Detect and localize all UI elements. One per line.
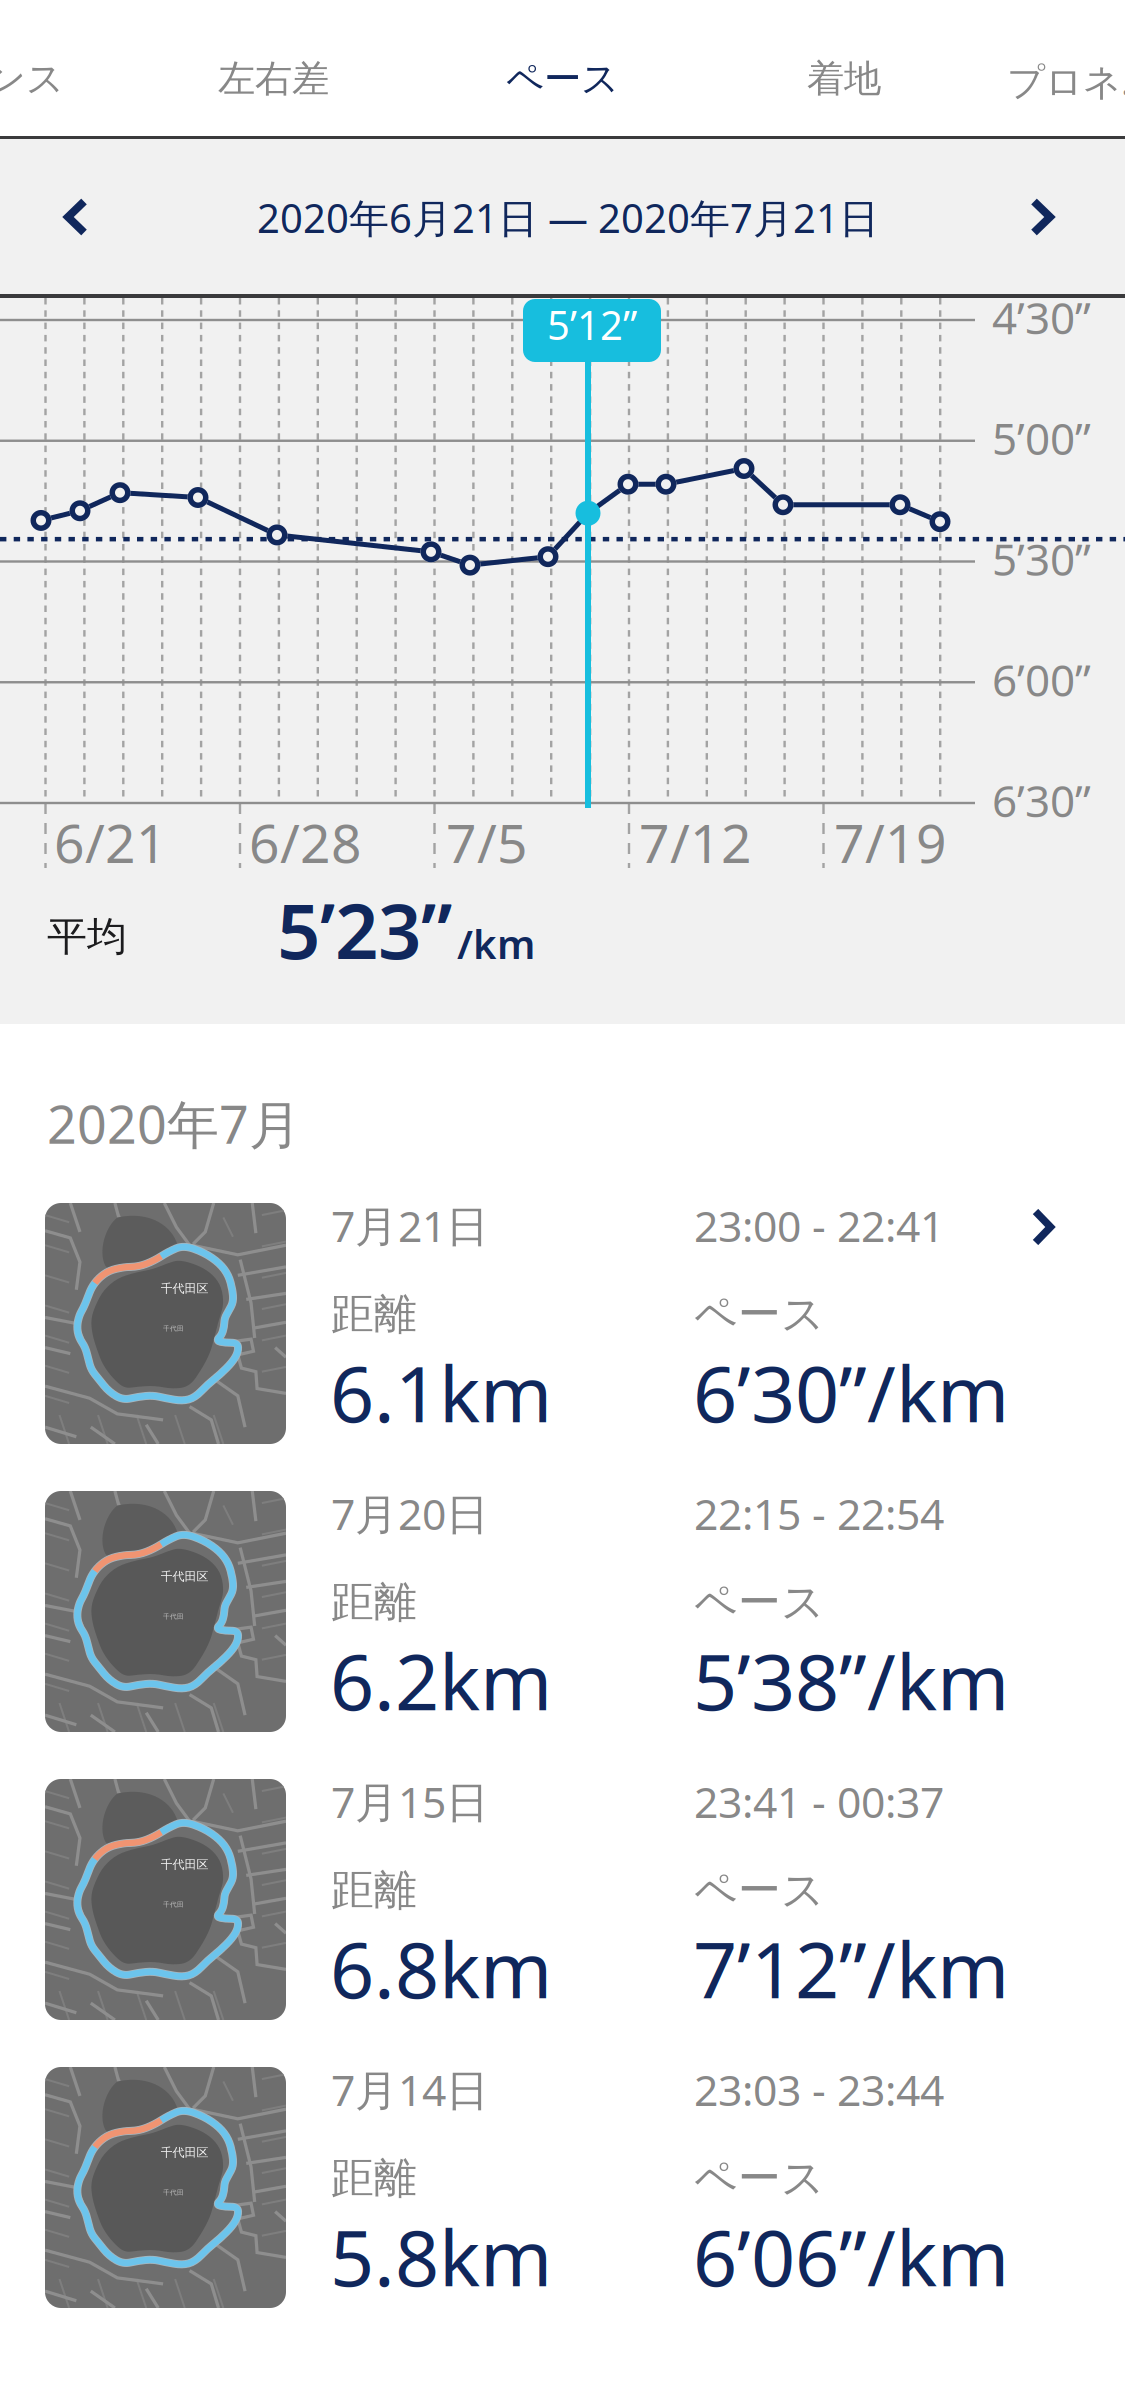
staticText: ペース [694, 2152, 825, 2204]
button[interactable]: 千代田区 [0, 1489, 1125, 1777]
staticText: 23:41 - 00:37 [694, 1773, 944, 1830]
staticText: 5’38”/km [693, 1629, 1009, 1732]
staticText: 2020年7月 [47, 1089, 301, 1158]
staticText: 2020年6月21日 — 2020年7月21日 [257, 191, 879, 244]
staticText: ペース [694, 1864, 825, 1916]
staticText: 7月21日 [331, 1197, 489, 1254]
staticText: 千代田区 [160, 1857, 208, 1872]
staticText: 5’00” [992, 409, 1091, 467]
button[interactable]: 千代田区 [0, 1201, 1125, 1489]
staticText: ンス [0, 56, 64, 102]
staticText: 7月14日 [331, 2061, 489, 2118]
staticText: 7’12”/km [693, 1917, 1009, 2020]
staticText: 7/19 [834, 807, 947, 878]
staticText: 距離 [331, 1864, 417, 1916]
staticText: 7月20日 [331, 1485, 489, 1542]
staticText: 左右差 [218, 56, 329, 102]
staticText: 5’12” [547, 298, 637, 351]
staticText: 6/21 [54, 807, 167, 878]
button[interactable]: Previous period [11, 141, 141, 293]
staticText: 千代田区 [160, 1569, 208, 1584]
staticText: 千代田区 [160, 1281, 208, 1296]
staticText: 23:00 - 22:41 [694, 1197, 944, 1254]
staticText: 距離 [331, 2152, 417, 2204]
staticText: 6’00” [992, 650, 1091, 709]
staticText: 6’06”/km [693, 2205, 1009, 2308]
staticText: 23:03 - 23:44 [694, 2061, 944, 2118]
button[interactable]: Next period [977, 141, 1107, 293]
staticText: 6.2km [330, 1629, 552, 1732]
staticText: 千代田区 [160, 2145, 208, 2160]
button[interactable]: Open activity detail [1001, 1185, 1085, 1269]
staticText: 平均 [47, 912, 127, 961]
button[interactable]: 千代田区 [0, 2065, 1125, 2353]
staticText: 7月15日 [331, 1773, 489, 1830]
staticText: 4’30” [992, 288, 1091, 346]
staticText: ペース [506, 56, 619, 102]
staticText: 距離 [331, 1288, 417, 1340]
staticText: 6.8km [330, 1917, 552, 2020]
staticText: ペース [694, 1288, 825, 1340]
staticText: 7/12 [639, 807, 752, 878]
staticText: プロネ… [1007, 56, 1125, 106]
staticText: 7/5 [446, 807, 528, 878]
staticText: 5’30” [992, 529, 1091, 588]
staticText: /km [457, 917, 535, 970]
staticText: 6.1km [330, 1341, 552, 1444]
staticText: 6’30”/km [693, 1341, 1009, 1444]
staticText: 22:15 - 22:54 [694, 1485, 944, 1542]
staticText: 5’23” [277, 879, 452, 980]
staticText: 千代田 [163, 2188, 184, 2197]
staticText: 着地 [807, 56, 881, 102]
staticText: 5.8km [330, 2205, 552, 2308]
staticText: 千代田 [163, 1900, 184, 1909]
button[interactable]: 千代田区 [0, 1777, 1125, 2065]
staticText: 6/28 [249, 807, 362, 878]
staticText: 千代田 [163, 1612, 184, 1621]
staticText: ペース [694, 1576, 825, 1628]
staticText: 6’30” [992, 771, 1091, 829]
staticText: 千代田 [163, 1324, 184, 1333]
staticText: 距離 [331, 1576, 417, 1628]
